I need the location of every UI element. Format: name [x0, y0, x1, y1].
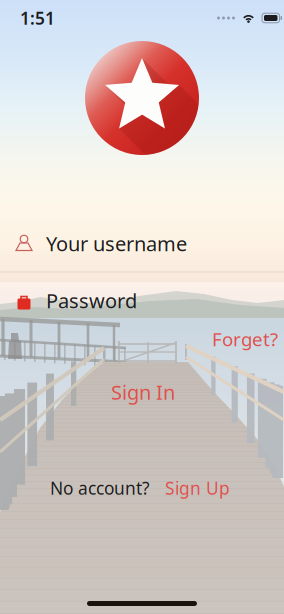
button[interactable]: Sign Up: [161, 473, 234, 502]
staticText: Sign Up: [165, 476, 230, 499]
staticText: No account?: [50, 476, 150, 499]
button[interactable]: Password: [0, 272, 284, 328]
staticText: 1:51: [20, 6, 55, 29]
staticText: Password: [46, 287, 137, 314]
button[interactable]: Forget?: [206, 323, 284, 355]
button[interactable]: Your username: [0, 215, 284, 271]
staticText: Your username: [46, 230, 187, 257]
staticText: Sign In: [111, 379, 175, 405]
staticText: Forget?: [212, 327, 278, 351]
button[interactable]: Sign In: [103, 374, 183, 410]
